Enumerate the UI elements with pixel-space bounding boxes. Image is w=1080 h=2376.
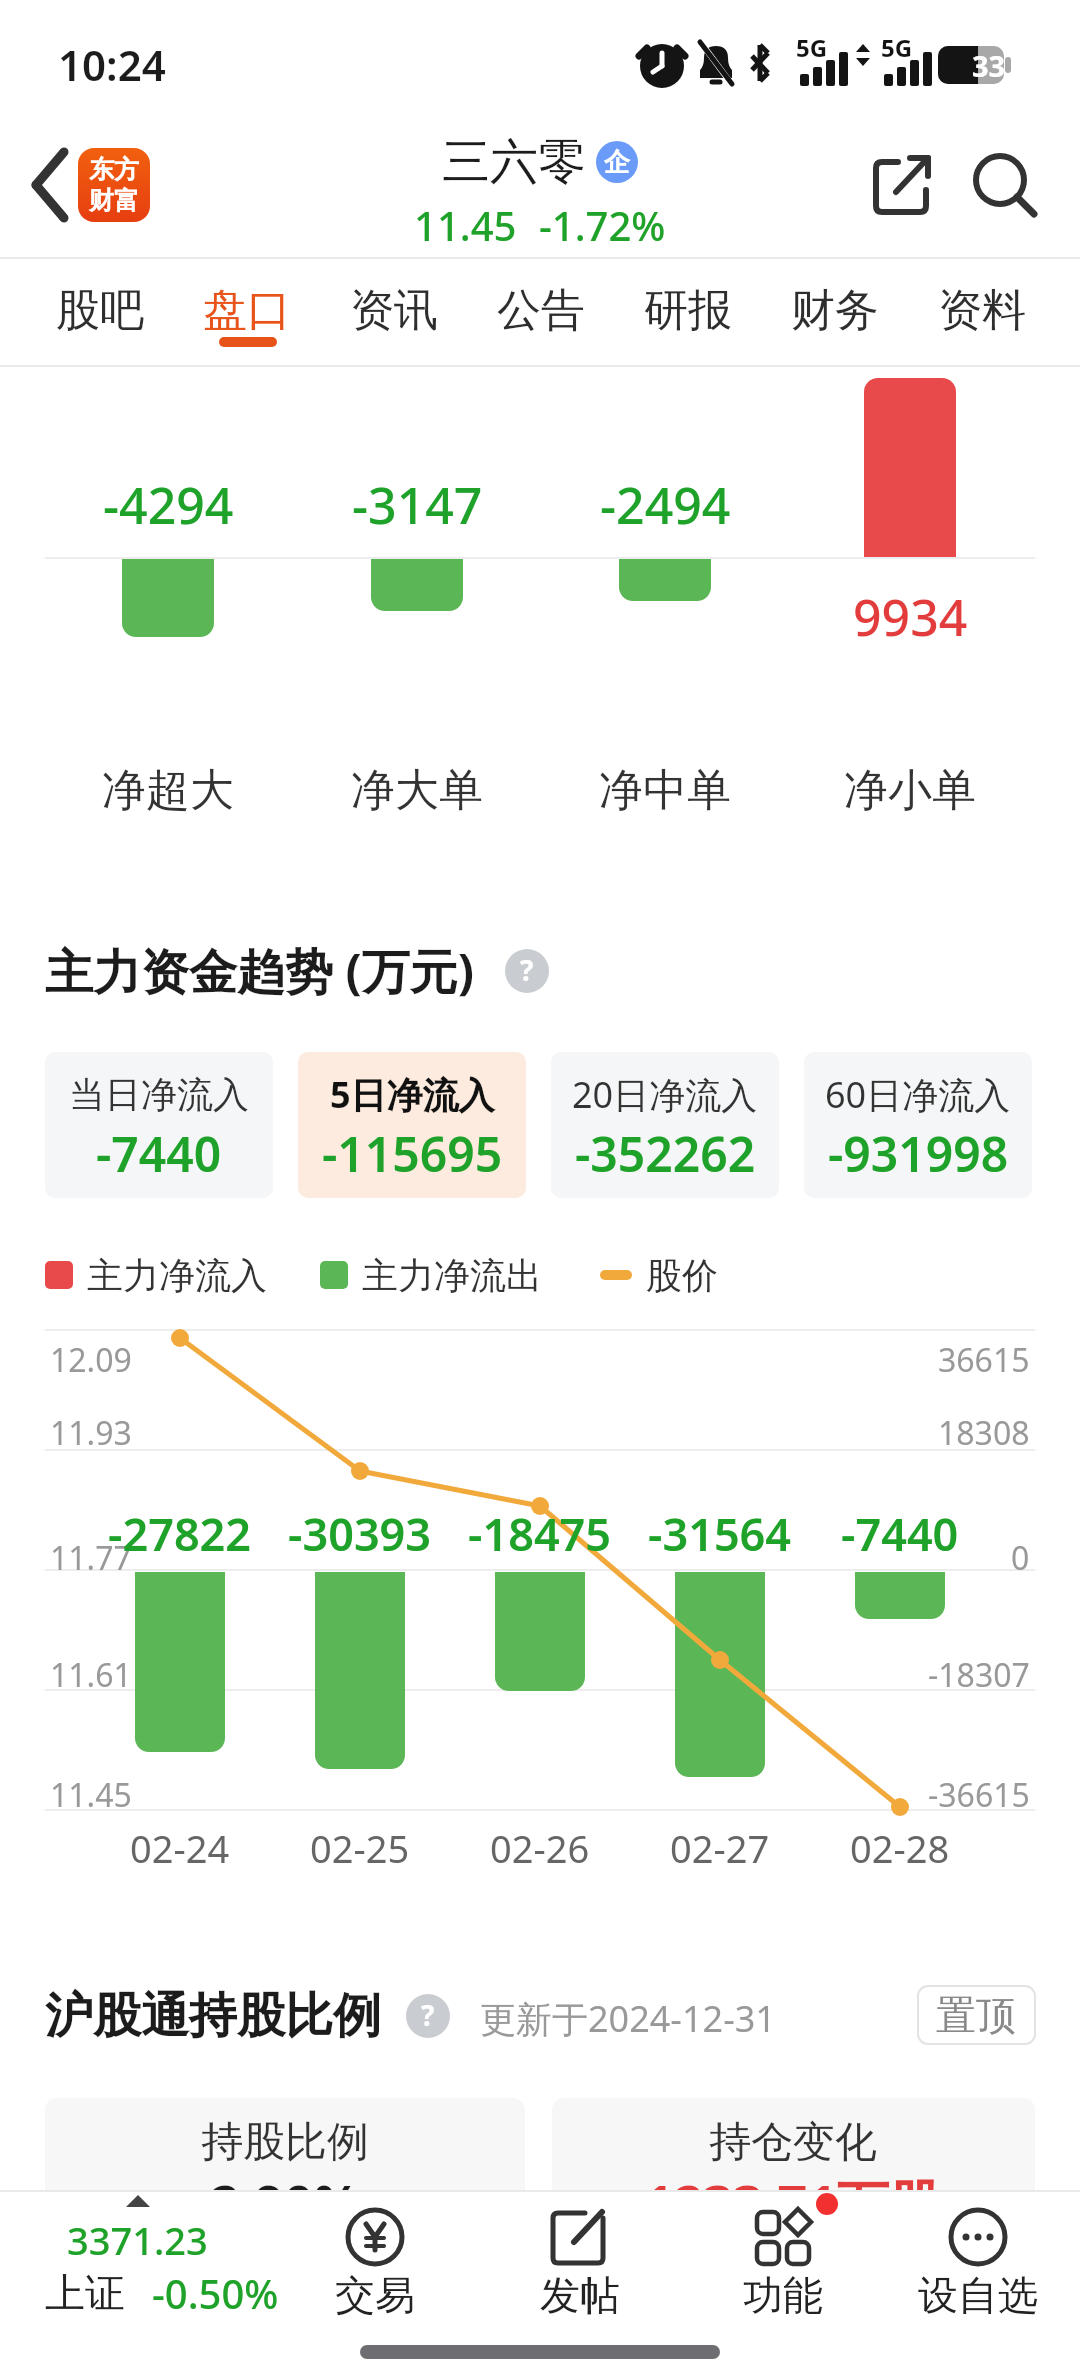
button[interactable] — [775, 262, 895, 362]
button[interactable] — [505, 2200, 655, 2340]
staticText: 5G — [881, 31, 913, 64]
staticText: 设自选 — [918, 2270, 1038, 2320]
staticText: 财富 — [89, 185, 139, 216]
staticText: 11.61 — [50, 1653, 132, 1697]
staticText: 11.45 — [414, 198, 517, 248]
staticText: 公告 — [497, 283, 585, 338]
staticText: 东方 — [89, 154, 139, 185]
staticText: 02-25 — [310, 1822, 410, 1874]
staticText: -931998 — [828, 1121, 1009, 1186]
staticText: 财务 — [791, 283, 879, 338]
staticText: 02-24 — [130, 1822, 230, 1874]
staticText: -4294 — [103, 471, 234, 539]
button[interactable] — [900, 2200, 1060, 2340]
staticText: 33 — [972, 46, 1006, 85]
staticText: 持股比例 — [201, 2116, 369, 2169]
button[interactable] — [300, 2200, 450, 2340]
button[interactable] — [922, 262, 1042, 362]
staticText: ? — [421, 1996, 435, 2034]
button[interactable] — [710, 2200, 860, 2340]
staticText: 18308 — [938, 1411, 1030, 1455]
staticText: -31564 — [648, 1503, 792, 1564]
staticText: 资讯 — [350, 283, 438, 338]
staticText: 02-26 — [490, 1822, 590, 1874]
button[interactable] — [481, 262, 601, 362]
staticText: 更新于2024-12-31 — [480, 1994, 776, 2043]
button[interactable] — [20, 140, 80, 230]
staticText: 三六零 — [442, 132, 586, 192]
staticText: -7440 — [96, 1121, 222, 1186]
staticText: 盘口 — [203, 283, 291, 338]
staticText: 10:24 — [58, 36, 166, 93]
staticText: 上证 — [45, 2268, 125, 2318]
staticText: -3147 — [352, 471, 483, 539]
staticText: -115695 — [322, 1121, 503, 1186]
staticText: 置顶 — [936, 1990, 1016, 2040]
staticText: -36615 — [928, 1773, 1030, 1817]
staticText: 11.45 — [50, 1773, 132, 1817]
staticText: 9934 — [853, 583, 968, 651]
button[interactable] — [187, 262, 307, 362]
staticText: 净小单 — [844, 763, 976, 818]
staticText: -18307 — [928, 1653, 1030, 1697]
staticText: -1.72% — [539, 198, 666, 248]
staticText: 交易 — [335, 2270, 415, 2320]
staticText: 发帖 — [540, 2270, 620, 2320]
staticText: 20日净流入 — [572, 1070, 758, 1119]
staticText: -0.50% — [152, 2266, 279, 2320]
staticText: 当日净流入 — [69, 1072, 249, 1117]
staticText: 持仓变化 — [709, 2116, 877, 2169]
staticText: 研报 — [644, 283, 732, 338]
button[interactable] — [298, 1052, 526, 1198]
staticText: 11.77 — [50, 1536, 132, 1580]
staticText: 5日净流入 — [330, 1070, 495, 1119]
staticText: 02-28 — [850, 1822, 950, 1874]
button[interactable] — [45, 1052, 273, 1198]
button[interactable] — [804, 1052, 1032, 1198]
staticText: 3371.23 — [67, 2214, 208, 2266]
button[interactable] — [628, 262, 748, 362]
staticText: -18475 — [468, 1503, 612, 1564]
button[interactable] — [918, 1986, 1035, 2044]
staticText: 净中单 — [599, 763, 731, 818]
staticText: 2.90% — [210, 2167, 361, 2238]
staticText: 12.09 — [50, 1338, 132, 1382]
staticText: 02-27 — [670, 1822, 770, 1874]
staticText: 主力净流入 — [87, 1253, 267, 1298]
staticText: 0 — [1011, 1536, 1030, 1580]
staticText: 5G — [796, 31, 828, 64]
staticText: -7440 — [841, 1503, 959, 1564]
staticText: 11.93 — [50, 1411, 132, 1455]
button[interactable] — [551, 1052, 779, 1198]
button[interactable] — [860, 150, 940, 220]
button[interactable] — [965, 150, 1045, 220]
staticText: 主力净流出 — [362, 1253, 542, 1298]
button[interactable] — [334, 262, 454, 362]
staticText: 功能 — [743, 2270, 823, 2320]
staticText: -30393 — [288, 1503, 432, 1564]
staticText: 净大单 — [351, 763, 483, 818]
staticText: 净超大 — [102, 763, 234, 818]
staticText: 1233.71万股 — [644, 2167, 942, 2238]
staticText: 资料 — [938, 283, 1026, 338]
staticText: -352262 — [575, 1121, 756, 1186]
button[interactable] — [0, 2192, 290, 2332]
staticText: 主力资金趋势 (万元) — [45, 938, 475, 1004]
staticText: -27822 — [108, 1503, 252, 1564]
staticText: ? — [520, 951, 534, 989]
staticText: 沪股通持股比例 — [45, 1986, 381, 2046]
staticText: 36615 — [938, 1338, 1030, 1382]
staticText: 企 — [604, 146, 630, 179]
button[interactable] — [40, 262, 160, 362]
staticText: -2494 — [600, 471, 731, 539]
staticText: 股价 — [646, 1253, 718, 1298]
staticText: 60日净流入 — [825, 1070, 1011, 1119]
staticText: 股吧 — [56, 283, 144, 338]
